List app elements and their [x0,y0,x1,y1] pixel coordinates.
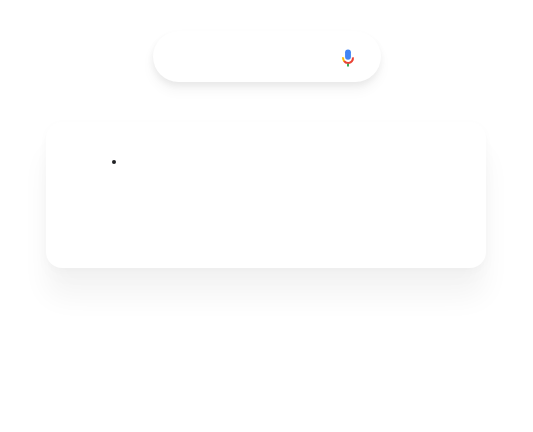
button[interactable]: Voice search [153,31,381,82]
button[interactable]: Voice search [336,46,360,70]
